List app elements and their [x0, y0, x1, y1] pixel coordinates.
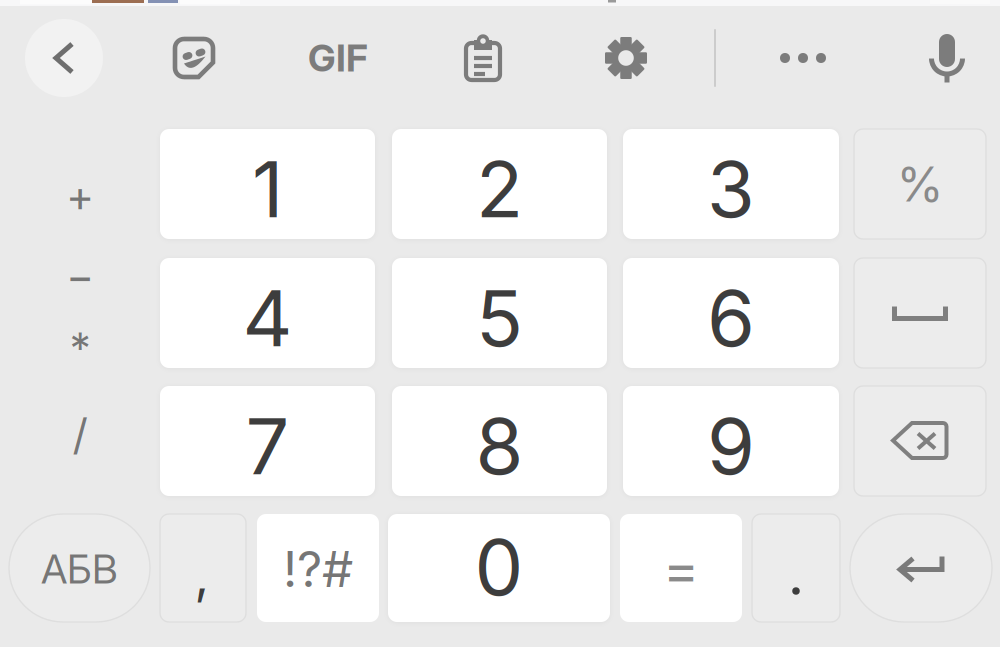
- button[interactable]: 4: [160, 258, 375, 368]
- staticText: /: [72, 408, 87, 460]
- button[interactable]: 5: [392, 258, 607, 368]
- button[interactable]: Space: [854, 258, 986, 368]
- button[interactable]: =: [620, 514, 742, 622]
- button[interactable]: %: [854, 129, 986, 239]
- staticText: 3: [707, 142, 755, 236]
- button[interactable]: −: [45, 241, 115, 311]
- button[interactable]: Voice input: [912, 23, 982, 93]
- button[interactable]: Stickers: [159, 23, 229, 93]
- button[interactable]: Clipboard: [448, 23, 518, 93]
- button[interactable]: Period: [752, 514, 840, 622]
- staticText: 6: [707, 271, 755, 365]
- button[interactable]: *: [45, 313, 115, 383]
- staticText: 9: [707, 399, 755, 493]
- button[interactable]: /: [45, 399, 115, 469]
- button[interactable]: АБВ: [9, 514, 150, 622]
- button[interactable]: 6: [623, 258, 839, 368]
- staticText: !?#: [283, 539, 353, 599]
- staticText: 8: [475, 399, 523, 493]
- staticText: =: [663, 536, 699, 602]
- button[interactable]: 9: [623, 386, 839, 496]
- button[interactable]: !?#: [257, 514, 379, 622]
- button[interactable]: 8: [392, 386, 607, 496]
- staticText: −: [66, 250, 94, 302]
- button[interactable]: Backspace: [854, 386, 986, 496]
- button[interactable]: Comma: [160, 514, 246, 622]
- staticText: %: [896, 155, 943, 213]
- button[interactable]: Settings: [591, 23, 661, 93]
- staticText: 1: [252, 142, 283, 236]
- button[interactable]: More options: [768, 23, 838, 93]
- staticText: 4: [242, 271, 292, 365]
- staticText: +: [66, 170, 94, 222]
- button[interactable]: 0: [388, 514, 610, 622]
- button[interactable]: 1: [160, 129, 375, 239]
- staticText: GIF: [308, 35, 368, 81]
- button[interactable]: 7: [160, 386, 375, 496]
- staticText: АБВ: [41, 545, 118, 593]
- staticText: 0: [474, 520, 523, 614]
- button[interactable]: Back: [25, 19, 103, 97]
- button[interactable]: 3: [623, 129, 839, 239]
- button[interactable]: +: [45, 161, 115, 231]
- staticText: *: [69, 322, 90, 374]
- staticText: ,: [194, 544, 209, 606]
- staticText: 5: [476, 271, 523, 365]
- button[interactable]: GIF: [298, 23, 378, 93]
- button[interactable]: Enter: [850, 514, 992, 622]
- staticText: 2: [476, 142, 523, 236]
- button[interactable]: 2: [392, 129, 607, 239]
- staticText: 7: [245, 399, 289, 493]
